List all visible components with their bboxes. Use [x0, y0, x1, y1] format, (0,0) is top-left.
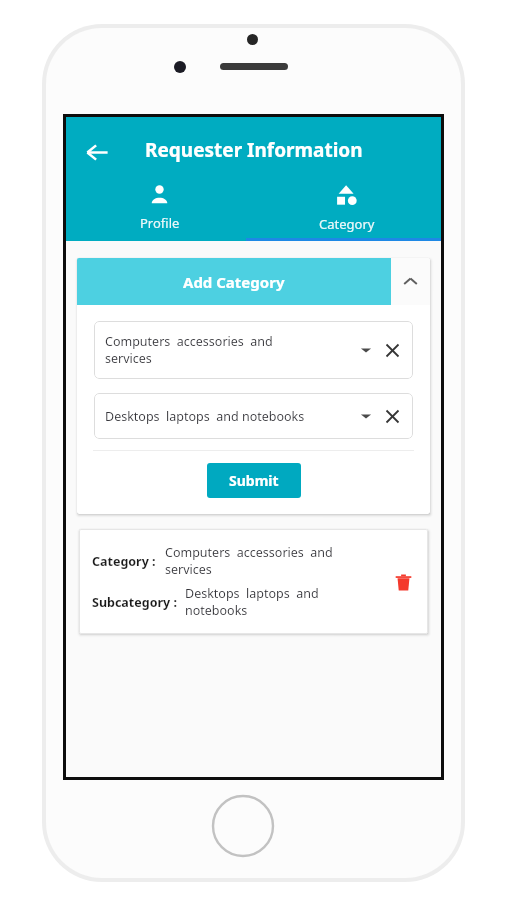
staticText: Requester Information — [145, 137, 363, 163]
staticText: services — [165, 561, 212, 578]
button[interactable]: Submit — [207, 463, 301, 498]
button[interactable]: Delete — [384, 563, 422, 601]
button[interactable]: Clear — [381, 405, 403, 427]
button[interactable]: Profile — [66, 175, 253, 241]
button[interactable]: Category : — [79, 529, 428, 634]
staticText: services — [105, 350, 152, 367]
staticText: Category — [319, 215, 375, 233]
staticText: Submit — [229, 471, 279, 490]
button[interactable]: Category — [253, 175, 441, 241]
staticText: Desktops laptops and — [185, 585, 319, 602]
staticText: Computers accessories and — [105, 333, 273, 350]
button[interactable]: Desktops laptops and notebooks — [94, 393, 413, 439]
button[interactable]: Add Category — [77, 258, 430, 305]
staticText: notebooks — [185, 602, 248, 619]
staticText: Add Category — [183, 272, 285, 292]
staticText: Category : — [92, 553, 156, 570]
staticText: Subcategory : — [92, 594, 177, 611]
other: Collapse — [391, 258, 430, 305]
button[interactable]: Clear — [381, 339, 403, 361]
staticText: Desktops laptops and notebooks — [105, 408, 305, 425]
button[interactable]: Back — [75, 130, 119, 174]
staticText: Computers accessories and — [165, 544, 333, 561]
staticText: Profile — [140, 214, 180, 232]
button[interactable]: Computers accessories and — [94, 321, 413, 379]
